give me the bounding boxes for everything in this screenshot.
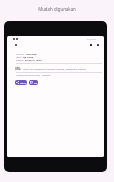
staticText: URL: [15,67,22,71]
staticText: Done [34,81,38,84]
staticText: Explore [20,81,27,84]
staticText: 09/04/21 18:32 [25,58,42,61]
button[interactable]: URL: [15,66,87,70]
button[interactable]: Bookmark [88,42,94,48]
staticText: Dibuat: [16,58,24,61]
staticText: Format: [16,52,25,55]
button[interactable]: Explore [15,80,27,85]
staticText: QR CODE [23,55,34,58]
button[interactable]: Copy [95,42,101,48]
button[interactable]: Done [29,80,38,85]
staticText: Mudah digunakan [0,6,114,12]
staticText: Link web [26,52,37,55]
staticText: Jenis: [16,55,22,58]
staticText: https://en.wikipedia.org/wiki/Android_(o… [23,67,87,70]
staticText: M Q aa oo [87,38,97,41]
staticText: Android (operating system) - Wikipedia [16,74,51,77]
